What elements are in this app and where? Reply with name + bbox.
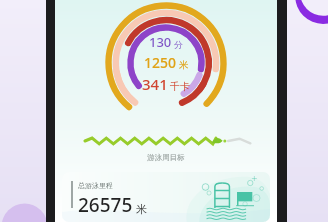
staticText: 总游泳里程 [78, 181, 113, 190]
staticText: 米 [136, 202, 147, 216]
staticText: 130 [149, 33, 172, 51]
button[interactable]: 130 [105, 2, 227, 124]
staticText: 千卡 [170, 80, 190, 93]
staticText: 游泳周目标 [147, 153, 185, 162]
staticText: 分 [174, 39, 183, 50]
staticText: 341 [142, 74, 168, 94]
staticText: 1250 [144, 53, 177, 72]
button[interactable]: 总游泳里程 [62, 172, 270, 222]
staticText: 米 [179, 59, 189, 71]
button[interactable]: Weekly swim progress [55, 132, 277, 150]
staticText: 26575 [78, 192, 133, 218]
